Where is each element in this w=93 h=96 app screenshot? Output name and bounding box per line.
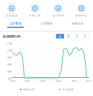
staticText: 历史数据 [40, 21, 52, 26]
button[interactable]: 告警记录 [23, 4, 46, 17]
staticText: 1,000k [6, 49, 12, 52]
staticText: 实时数据 [9, 21, 21, 26]
staticText: 00:00 [10, 79, 15, 83]
staticText: 设备管理 [6, 14, 18, 17]
button[interactable]: 数据导出 [70, 4, 93, 17]
staticText: 600k [7, 63, 11, 66]
button[interactable]: 运行报表 [46, 4, 70, 17]
staticText: 今日能耗 [62, 87, 74, 91]
staticText: 16:00 [71, 79, 76, 83]
staticText: 日 [59, 34, 62, 38]
staticText: 200k [7, 77, 11, 80]
staticText: 20:00 [86, 79, 91, 83]
staticText: 04:00 [25, 79, 30, 83]
staticText: 运行报表 [52, 14, 64, 17]
button[interactable]: 设备管理 [0, 4, 23, 17]
staticText: 年 [84, 34, 87, 38]
button[interactable]: 月 [73, 34, 81, 39]
button[interactable]: 日 [56, 34, 64, 39]
staticText: 400k [7, 70, 11, 73]
staticText: 800k [7, 56, 11, 59]
button[interactable]: 历史数据 [31, 19, 62, 29]
staticText: 08:00 [40, 79, 45, 83]
button[interactable]: 年 [81, 34, 89, 39]
staticText: 周 [67, 34, 70, 38]
button[interactable]: 报警信息 [62, 19, 93, 29]
staticText: 报警信息 [71, 21, 83, 26]
button[interactable]: 周 [64, 34, 73, 39]
staticText: 能源趋势分析 [2, 34, 20, 39]
staticText: 告警记录 [29, 14, 41, 17]
button[interactable]: 实时数据 [0, 19, 31, 29]
staticText: 数据导出 [75, 14, 87, 17]
staticText: 月 [75, 34, 78, 38]
staticText: 1,200k [6, 42, 12, 45]
staticText: 12:00 [56, 79, 61, 83]
staticText: 用电负荷 [23, 87, 35, 91]
